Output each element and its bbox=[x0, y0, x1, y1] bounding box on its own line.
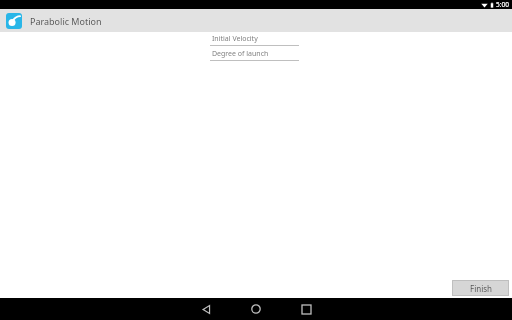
button[interactable]: Recent apps bbox=[286, 298, 326, 320]
button[interactable]: Home bbox=[236, 298, 276, 320]
button[interactable]: Initial Velocity bbox=[210, 33, 299, 48]
staticText: Initial Velocity bbox=[212, 34, 258, 44]
other: Parabolic Motion app icon bbox=[6, 13, 22, 29]
staticText: Parabolic Motion bbox=[30, 15, 102, 27]
button[interactable]: Finish bbox=[452, 280, 509, 296]
button[interactable]: Back bbox=[186, 298, 226, 320]
staticText: 5:00 bbox=[496, 0, 509, 9]
staticText: Finish bbox=[470, 283, 492, 294]
button[interactable]: Degree of launch bbox=[210, 48, 299, 63]
staticText: Degree of launch bbox=[212, 49, 269, 59]
